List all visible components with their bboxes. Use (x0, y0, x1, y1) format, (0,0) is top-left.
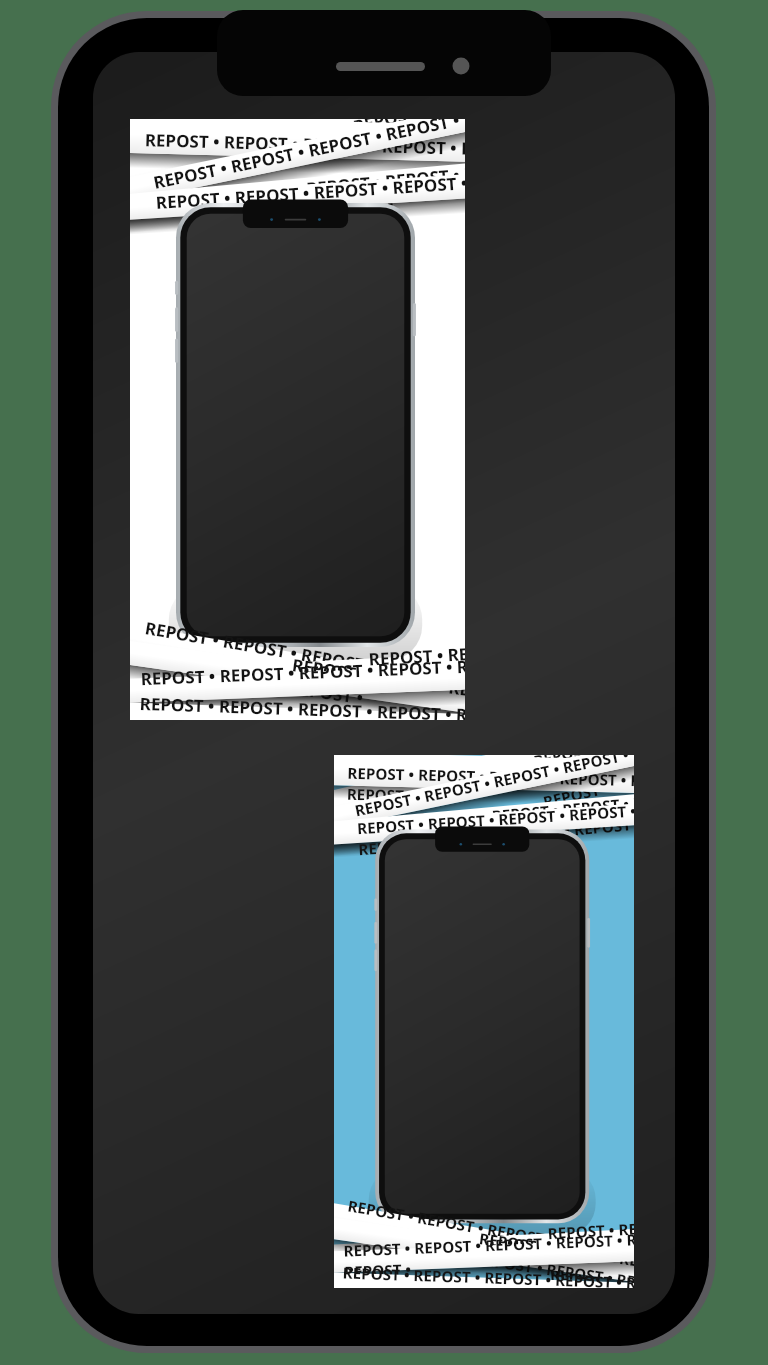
button[interactable]: Repost story template preview (0, 0, 768, 1365)
